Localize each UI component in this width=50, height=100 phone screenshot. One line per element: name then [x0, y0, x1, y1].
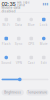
button[interactable]: Blue	[25, 17, 37, 27]
staticText: Edit	[41, 61, 47, 65]
staticText: Flash	[2, 42, 11, 46]
staticText: Brightness	[4, 91, 21, 94]
staticText: ▮▮▮	[42, 2, 48, 6]
button[interactable]: Mute	[37, 36, 50, 46]
staticText: Data	[15, 23, 22, 27]
staticText: Mute	[40, 42, 48, 46]
staticText: GPS	[28, 42, 34, 46]
button[interactable]: Edit	[37, 55, 50, 65]
button[interactable]: Lock	[37, 17, 50, 27]
button[interactable]: Sync	[12, 36, 25, 46]
button[interactable]: Data	[12, 17, 25, 27]
button[interactable]: Sound	[0, 55, 12, 65]
staticText: Wi-Fi	[2, 23, 10, 27]
staticText: Carrier	[17, 4, 25, 7]
button[interactable]: Wi-Fi	[0, 17, 12, 27]
button[interactable]: Flash	[0, 36, 12, 46]
button[interactable]: GPS	[25, 36, 37, 46]
staticText: VPN	[16, 61, 22, 65]
staticText: 02:35	[1, 1, 15, 7]
button[interactable]: VPN	[12, 55, 25, 65]
staticText: Blue	[28, 23, 35, 27]
staticText: Mon, Sep 6	[17, 1, 29, 4]
staticText: Lock	[40, 23, 48, 27]
staticText: Sync	[15, 42, 23, 46]
button[interactable]: Temperature	[26, 89, 48, 95]
button[interactable]: Cast	[25, 55, 37, 65]
button[interactable]: Brightness	[1, 89, 24, 95]
staticText: Cast	[28, 61, 35, 65]
staticText: Sound	[1, 61, 11, 65]
staticText: Mobile data disabled	[1, 6, 20, 13]
staticText: Temperature	[27, 91, 47, 94]
